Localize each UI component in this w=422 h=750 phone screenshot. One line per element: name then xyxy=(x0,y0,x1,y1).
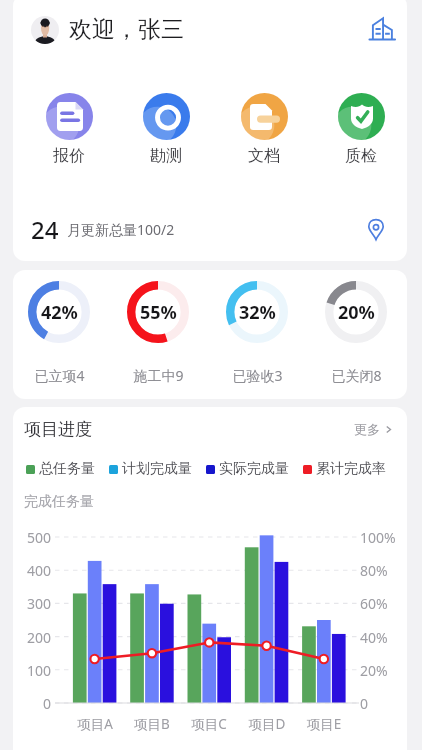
button[interactable]: 24 xyxy=(31,203,389,255)
staticText: 已关闭8 xyxy=(325,366,388,385)
staticText: 实际完成量 xyxy=(219,460,289,478)
button[interactable]: Location xyxy=(363,216,389,242)
staticText: 400 xyxy=(13,561,51,580)
staticText: 质检 xyxy=(345,146,377,166)
staticText: 100 xyxy=(13,661,51,680)
staticText: 42% xyxy=(41,300,78,325)
staticText: 报价 xyxy=(53,146,85,166)
staticText: 完成任务量 xyxy=(24,493,94,511)
staticText: 已立项4 xyxy=(28,366,91,385)
staticText: 文档 xyxy=(248,146,280,166)
staticText: 0 xyxy=(13,694,51,713)
staticText: 计划完成量 xyxy=(122,460,192,478)
button[interactable]: 文档 xyxy=(231,87,297,166)
button[interactable]: 报价 xyxy=(36,87,102,166)
staticText: 80% xyxy=(360,561,388,580)
button[interactable]: 42% xyxy=(28,274,91,390)
staticText: 300 xyxy=(13,594,51,613)
staticText: 总任务量 xyxy=(39,460,95,478)
staticText: 200 xyxy=(13,628,51,647)
staticText: 项目D xyxy=(241,715,293,733)
staticText: 20% xyxy=(360,661,388,680)
staticText: 24 xyxy=(31,213,59,246)
button[interactable]: 勘测 xyxy=(133,87,199,166)
staticText: 更多 xyxy=(354,421,380,437)
staticText: 勘测 xyxy=(150,146,182,166)
staticText: 月更新总量100/2 xyxy=(67,220,175,239)
button[interactable]: 质检 xyxy=(328,87,394,166)
staticText: 已验收3 xyxy=(226,366,289,385)
staticText: 项目C xyxy=(183,715,235,733)
staticText: 项目A xyxy=(69,715,121,733)
button[interactable]: Company xyxy=(364,11,400,47)
button[interactable]: 更多 xyxy=(354,421,394,437)
staticText: 0 xyxy=(360,694,369,713)
staticText: 100% xyxy=(360,528,396,547)
staticText: 20% xyxy=(338,300,375,325)
button[interactable]: 32% xyxy=(226,274,289,390)
button[interactable]: 20% xyxy=(325,274,388,390)
staticText: 欢迎，张三 xyxy=(69,15,184,44)
button[interactable]: 欢迎，张三 xyxy=(18,6,348,52)
staticText: 500 xyxy=(13,528,51,547)
staticText: 60% xyxy=(360,594,388,613)
staticText: 项目进度 xyxy=(24,419,92,440)
staticText: 项目B xyxy=(126,715,178,733)
staticText: 施工中9 xyxy=(127,366,190,385)
button[interactable]: 55% xyxy=(127,274,190,390)
staticText: 累计完成率 xyxy=(316,460,386,478)
staticText: 32% xyxy=(239,300,276,325)
staticText: 55% xyxy=(140,300,177,325)
staticText: 40% xyxy=(360,628,388,647)
staticText: 项目E xyxy=(298,715,350,733)
